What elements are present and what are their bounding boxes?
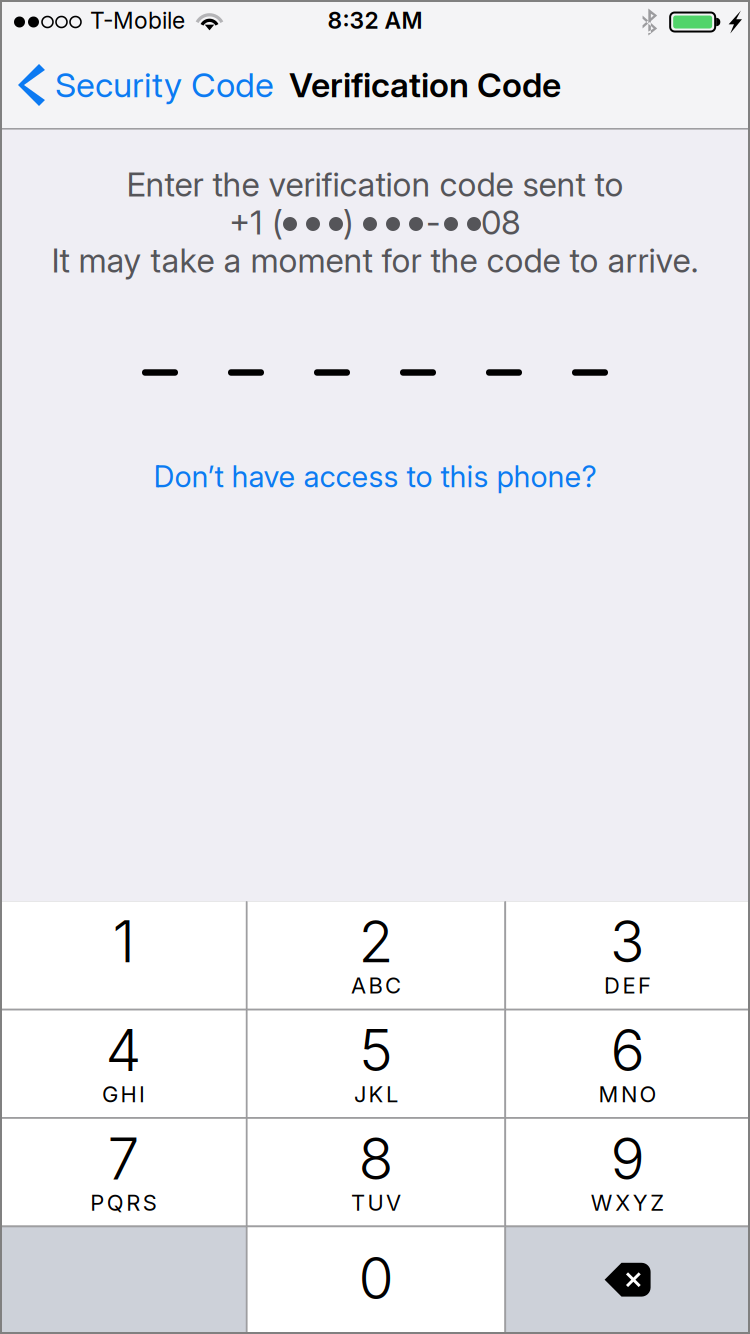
staticText: 5 (359, 1016, 393, 1085)
button[interactable]: 6 (506, 1010, 749, 1117)
staticText: 1 (112, 907, 134, 976)
button[interactable]: 5 (247, 1010, 504, 1117)
staticText: ) (343, 202, 363, 242)
staticText: 2 (358, 907, 393, 976)
staticText: 6 (611, 1016, 645, 1085)
staticText: DEF (604, 972, 651, 999)
staticText: 0 (358, 1244, 393, 1313)
button[interactable]: 9 (506, 1119, 749, 1226)
staticText: 08 (481, 202, 521, 242)
staticText: - (426, 202, 441, 242)
staticText: ABC (351, 972, 401, 999)
button[interactable]: Delete (506, 1227, 749, 1332)
button[interactable]: 7 (1, 1119, 246, 1226)
button[interactable]: Security Code (2, 42, 289, 128)
staticText: WXYZ (591, 1189, 664, 1216)
button[interactable]: 0 (247, 1227, 504, 1332)
staticText: GHI (102, 1081, 145, 1108)
staticText: T-Mobile (90, 7, 185, 34)
staticText: Security Code (55, 64, 274, 105)
staticText: Don’t have access to this phone? (153, 459, 596, 494)
button[interactable]: Don’t have access to this phone? (153, 457, 596, 495)
staticText: MNO (599, 1081, 657, 1108)
button[interactable]: 4 (1, 1010, 246, 1117)
staticText: JKL (354, 1081, 398, 1108)
button[interactable]: 1 (1, 901, 246, 1009)
staticText: 8:32 AM (327, 7, 422, 34)
staticText: 7 (107, 1124, 139, 1193)
button[interactable]: 8 (247, 1119, 504, 1226)
staticText: 9 (611, 1124, 645, 1193)
staticText (373, 1309, 379, 1334)
staticText: It may take a moment for the code to arr… (51, 240, 698, 280)
staticText: TUV (351, 1189, 401, 1216)
staticText: 4 (105, 1016, 141, 1085)
button[interactable]: 2 (247, 901, 504, 1009)
staticText: 3 (610, 907, 645, 976)
staticText: PQRS (90, 1189, 157, 1216)
staticText: Enter the verification code sent to (126, 164, 623, 204)
button[interactable]: 3 (506, 901, 749, 1009)
staticText: 8 (358, 1124, 393, 1193)
button[interactable]: Verification code, 6 digits (142, 350, 608, 394)
staticText: Verification Code (289, 64, 561, 105)
staticText: +1 ( (229, 202, 283, 242)
